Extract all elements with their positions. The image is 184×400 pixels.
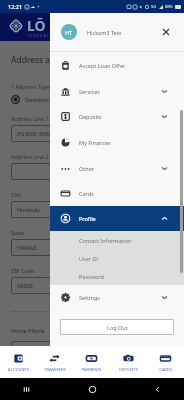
staticText: Address and Conta [11, 54, 87, 66]
staticText: 96820 [17, 282, 33, 289]
staticText: LŌ [27, 16, 46, 35]
button[interactable]: ACCOUNTS [0, 346, 36, 378]
staticText: ZIP Code [11, 267, 35, 274]
button[interactable]: Profile [50, 206, 184, 231]
staticText: Contact Information [79, 237, 132, 244]
staticText: Home Phone [11, 327, 45, 334]
staticText: PAYMENTS [81, 367, 102, 372]
button[interactable]: Accept Loan Offer [50, 52, 184, 78]
staticText: Domestic [25, 96, 50, 103]
staticText: CARDS [159, 367, 172, 372]
staticText: 12:21 [8, 3, 23, 10]
staticText: TRANSFERS [44, 367, 66, 372]
staticText: FEDERAL [27, 33, 50, 38]
button[interactable]: PAYMENTS [73, 346, 110, 378]
button[interactable]: Settings [50, 285, 184, 310]
button[interactable]: DEPOSITS [110, 346, 147, 378]
button[interactable]: TRANSFERS [36, 346, 73, 378]
staticText: Hickam3 Test [87, 29, 122, 36]
button[interactable]: Deposits [50, 104, 184, 129]
staticText: Honolulu [17, 206, 41, 213]
staticText: Password [79, 273, 104, 280]
staticText: Address Line 1 [11, 115, 49, 122]
button[interactable]: Password [50, 267, 184, 285]
staticText: Services [79, 88, 100, 95]
button[interactable]: CARDS [147, 346, 184, 378]
staticText: City [11, 191, 21, 198]
staticText: Deposits [79, 113, 102, 120]
button[interactable]: User ID [50, 249, 184, 267]
staticText: Cards [79, 190, 94, 197]
button[interactable]: Cards [50, 181, 184, 206]
staticText: ACCOUNTS [8, 367, 29, 372]
staticText: PO BOX 30023 [17, 130, 55, 137]
staticText: HAWAII [17, 244, 37, 251]
staticText: State [11, 229, 25, 236]
staticText: Profile [79, 215, 96, 222]
button[interactable]: My Finances [50, 129, 184, 155]
button[interactable]: Log Out [60, 319, 174, 335]
staticText: Address Line 2 (O [11, 153, 56, 160]
staticText: * Address Type [11, 83, 50, 90]
staticText: 5G [151, 4, 157, 9]
staticText: Other [79, 165, 95, 172]
staticText: HT [65, 29, 73, 36]
staticText: DEPOSITS [119, 367, 138, 372]
button[interactable]: Services [50, 78, 184, 104]
staticText: User ID [79, 255, 99, 262]
staticText: Accept Loan Offer [79, 62, 126, 69]
button[interactable]: Contact Information [50, 231, 184, 249]
staticText: Settings [79, 294, 100, 301]
staticText: 88% [165, 4, 173, 9]
button[interactable]: Close drawer [160, 26, 172, 38]
button[interactable]: Other [50, 155, 184, 181]
staticText: My Finances [79, 139, 111, 146]
staticText: Log Out [107, 324, 128, 331]
